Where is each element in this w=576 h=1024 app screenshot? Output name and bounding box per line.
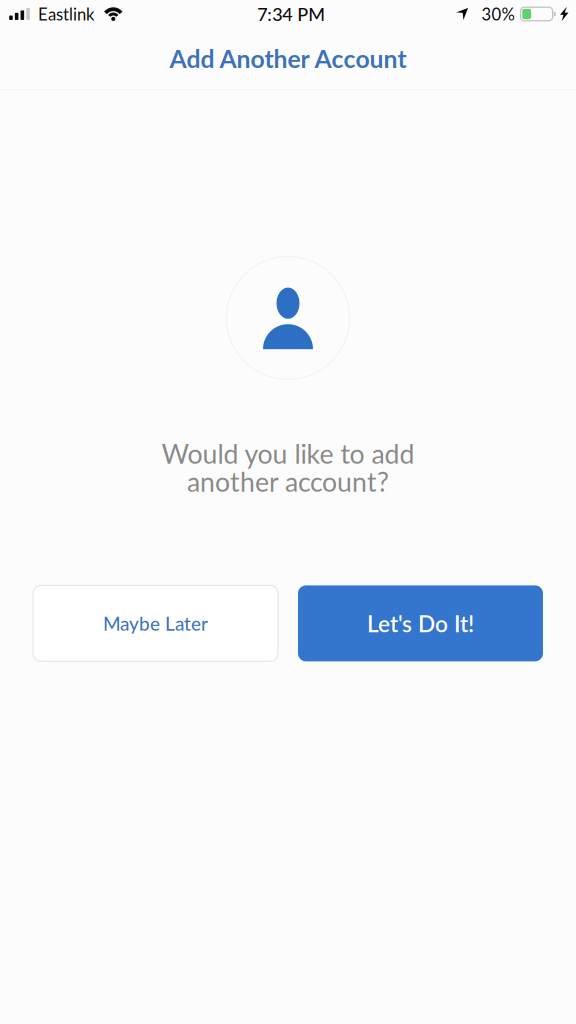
staticText: Add Another Account xyxy=(169,44,406,73)
staticText: Would you like to add xyxy=(161,437,414,469)
button[interactable]: Maybe Later xyxy=(33,585,278,661)
button[interactable]: Add Another Account xyxy=(0,28,576,89)
staticText: another account? xyxy=(187,465,389,497)
button[interactable]: Let's Do It! xyxy=(298,585,543,661)
staticText: Maybe Later xyxy=(103,612,208,635)
staticText: 7:34 PM xyxy=(257,3,325,25)
staticText: Let's Do It! xyxy=(367,610,474,637)
staticText: 30% xyxy=(482,4,515,24)
staticText: Eastlink xyxy=(38,4,94,24)
